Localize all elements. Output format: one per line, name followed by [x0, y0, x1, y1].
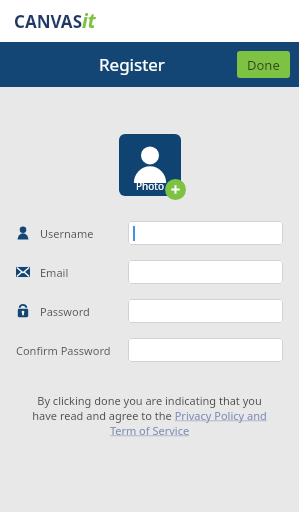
staticText: Password	[40, 304, 90, 319]
staticText: Register	[99, 53, 165, 76]
staticText: Photo	[136, 179, 164, 193]
staticText: CANVAS	[14, 10, 82, 33]
button[interactable]	[128, 221, 283, 245]
staticText: Username	[40, 226, 94, 241]
staticText: Email	[40, 265, 69, 280]
button[interactable]	[128, 260, 283, 284]
staticText: Confirm Password	[16, 343, 111, 358]
staticText: it	[82, 8, 96, 34]
staticText: Done	[247, 56, 280, 74]
button[interactable]	[128, 338, 283, 362]
button[interactable]	[128, 299, 283, 323]
button[interactable]: Add photo	[119, 134, 181, 196]
button[interactable]: By clicking done you are indicating that…	[30, 393, 269, 438]
button[interactable]: Done	[237, 51, 290, 78]
